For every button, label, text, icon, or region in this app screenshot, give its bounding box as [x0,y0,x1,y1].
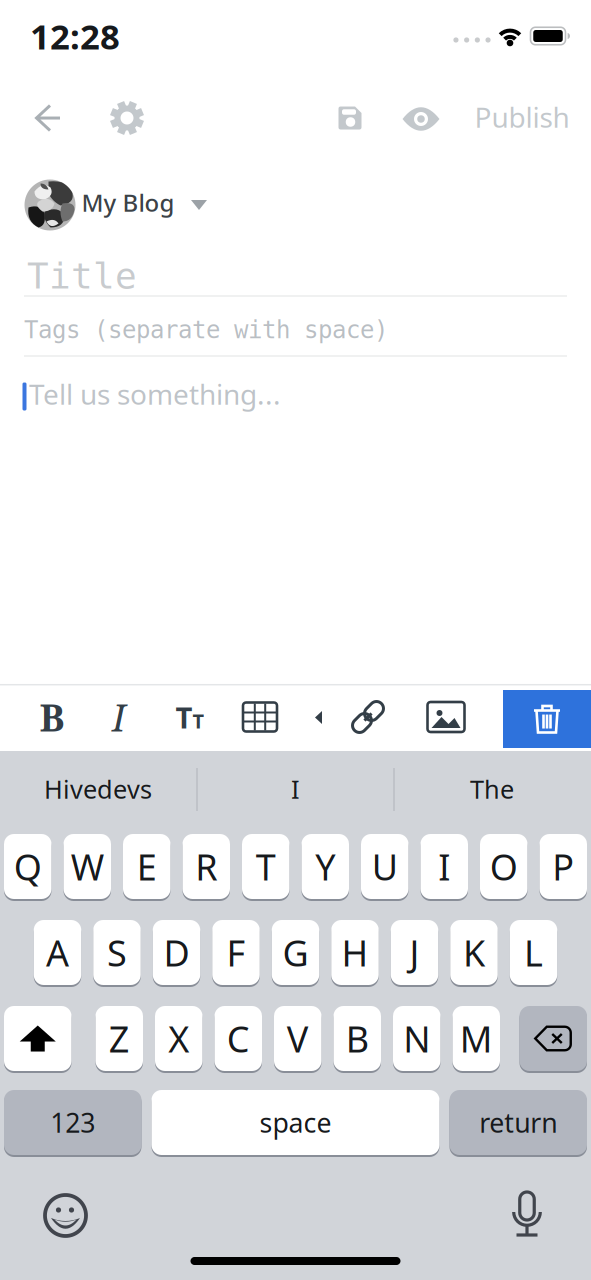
button[interactable] [233,687,287,747]
staticText: L [524,929,543,976]
staticText: return [479,1105,557,1140]
button[interactable]: J [391,919,438,986]
staticText: B [39,692,64,742]
button[interactable]: Title [27,251,570,301]
button[interactable]: E [123,833,170,900]
staticText: K [463,929,485,976]
button[interactable]: A [34,919,81,986]
button[interactable] [99,93,155,143]
button[interactable]: D [153,919,200,986]
button[interactable]: N [393,1005,440,1072]
staticText: T [256,843,276,890]
button[interactable]: G [272,919,319,986]
staticText: Q [14,843,42,890]
button[interactable]: K [450,919,498,986]
staticText: C [227,1015,250,1062]
button[interactable]: Hivedevs [3,761,193,817]
staticText: T [192,707,204,734]
staticText: P [552,843,574,890]
button[interactable]: W [63,833,111,900]
staticText: H [341,929,368,976]
staticText: N [403,1015,430,1062]
button[interactable]: Tags (separate with space) [24,310,567,350]
button[interactable]: The [397,761,587,817]
staticText: Hivedevs [44,772,152,806]
staticText: Tell us something... [29,375,281,413]
staticText: I [112,692,126,742]
button[interactable]: 123 [4,1089,141,1156]
button[interactable] [419,687,473,747]
button[interactable]: I [97,687,141,747]
button[interactable]: F [212,919,260,986]
button[interactable]: V [274,1005,321,1072]
staticText: Y [315,843,335,890]
staticText: R [195,843,217,890]
staticText: X [168,1015,189,1062]
button[interactable]: Tell us something... [29,377,569,411]
staticText: F [226,929,245,976]
button[interactable]: M [452,1005,500,1072]
staticText: I [438,843,450,890]
staticText: 12:28 [30,13,120,59]
button[interactable]: T [163,687,217,747]
button[interactable]: B [333,1005,381,1072]
button[interactable]: space [151,1089,439,1156]
staticText: My Blog [81,187,174,218]
staticText: E [137,843,157,890]
staticText: S [107,929,127,976]
staticText: space [259,1105,331,1140]
staticText: B [346,1015,369,1062]
staticText: The [470,772,514,806]
staticText: D [163,929,189,976]
button[interactable]: H [331,919,379,986]
staticText: M [460,1015,493,1062]
button[interactable]: My Blog [0,0,591,1280]
button[interactable] [392,94,450,144]
staticText: Z [109,1015,130,1062]
button[interactable]: T [242,833,289,900]
button[interactable]: Q [4,833,51,900]
button[interactable]: P [539,833,587,900]
staticText: V [287,1015,309,1062]
button[interactable] [503,690,591,748]
button[interactable]: return [449,1089,587,1156]
button[interactable] [341,687,395,747]
button[interactable] [20,93,76,143]
button[interactable]: C [214,1005,262,1072]
button[interactable]: Publish [474,98,569,136]
button[interactable]: S [93,919,141,986]
button[interactable]: O [480,833,527,900]
button[interactable] [519,1005,587,1072]
staticText: U [372,843,398,890]
staticText: O [490,843,518,890]
button[interactable] [497,1183,557,1245]
button[interactable] [322,93,378,143]
button[interactable]: B [25,687,79,747]
staticText: J [409,929,419,976]
staticText: G [282,929,308,976]
staticText: Publish [474,98,569,136]
staticText: A [46,929,69,976]
staticText: Title [27,256,137,296]
button[interactable] [35,1184,95,1246]
button[interactable]: Y [301,833,349,900]
staticText: T [175,697,192,736]
staticText: 123 [50,1105,95,1140]
button[interactable]: U [361,833,408,900]
button[interactable]: I [200,761,390,817]
button[interactable]: X [155,1005,202,1072]
button[interactable] [4,1005,71,1072]
button[interactable]: L [510,919,557,986]
staticText: Tags (separate with space) [24,316,388,344]
button[interactable]: I [420,833,468,900]
staticText: W [71,843,104,890]
button[interactable]: R [182,833,230,900]
staticText: I [291,772,300,806]
button[interactable]: Z [95,1005,143,1072]
